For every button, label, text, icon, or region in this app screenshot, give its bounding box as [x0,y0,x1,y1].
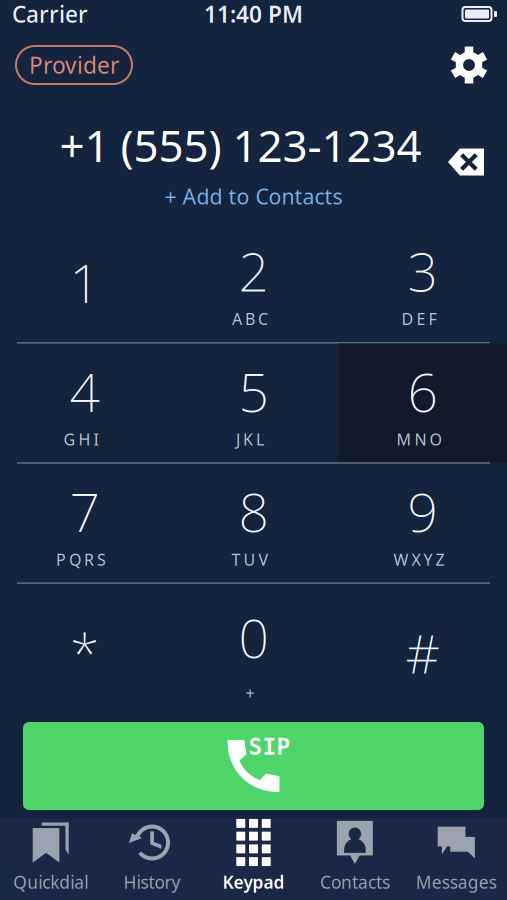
staticText: DEF [401,308,443,329]
staticText: +1 (555) 123-1234 [59,116,421,174]
staticText: Contacts [320,870,390,893]
staticText: 8 [238,476,268,547]
staticText: 9 [407,476,437,547]
button[interactable]: 3 [338,222,507,342]
button[interactable]: 0 [169,584,338,722]
button[interactable]: 9 [338,463,507,582]
button[interactable]: * [0,584,169,722]
button[interactable]: Keypad [203,816,304,900]
staticText: WXYZ [393,549,451,570]
staticText: JKL [236,429,271,450]
button[interactable]: 4 [0,343,169,462]
staticText: Keypad [222,870,284,893]
staticText: GHI [63,429,105,450]
button[interactable]: 2 [169,222,338,342]
staticText: PQRS [56,549,113,570]
button[interactable]: # [338,584,507,722]
button[interactable]: SIP [23,722,484,810]
staticText: 6 [407,356,437,427]
button[interactable]: + Add to Contacts [164,179,342,213]
staticText: 3 [407,235,437,306]
staticText: 1 [69,247,99,318]
staticText: MNO [396,429,448,450]
button[interactable]: 6 [338,343,507,462]
staticText: ABC [232,308,275,329]
button[interactable]: Provider [16,46,132,84]
button[interactable]: 8 [169,463,338,582]
staticText: Provider [29,50,119,80]
staticText: TUV [231,549,275,570]
button[interactable]: 5 [169,343,338,462]
staticText: 5 [238,356,268,427]
button[interactable]: History [101,816,203,900]
staticText: 4 [69,356,99,427]
staticText: 0 [238,602,268,673]
staticText: Messages [416,870,497,893]
button[interactable]: Settings [450,46,488,84]
button[interactable]: 7 [0,463,169,582]
staticText: SIP [248,734,290,760]
staticText: 7 [69,476,99,547]
staticText: Quickdial [13,870,88,893]
staticText: + Add to Contacts [164,182,342,210]
staticText: 2 [238,235,268,306]
staticText: + [245,683,261,704]
button[interactable]: Contacts [304,816,406,900]
staticText: History [124,870,181,893]
button[interactable]: Messages [406,816,507,900]
staticText: Carrier [12,0,88,29]
staticText: # [405,617,439,688]
staticText: * [70,617,99,688]
button[interactable]: 1 [0,222,169,342]
button[interactable]: Delete [448,148,484,175]
staticText: 11:40 PM [204,0,303,29]
button[interactable]: Quickdial [0,816,101,900]
